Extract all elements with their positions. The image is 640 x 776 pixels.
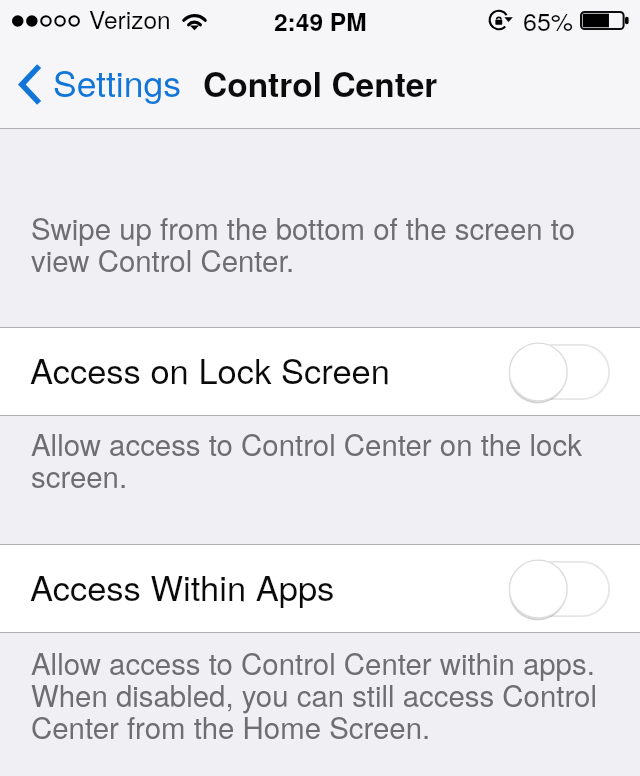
staticText: 65% (523, 2, 574, 38)
button[interactable]: Access on Lock Screen (0, 328, 640, 415)
staticText: Allow access to Control Center within ap… (31, 641, 612, 747)
button[interactable]: Settings (0, 59, 193, 110)
staticText: Allow access to Control Center on the lo… (31, 422, 600, 496)
button[interactable]: Toggle (510, 560, 610, 618)
staticText: Access on Lock Screen (30, 344, 390, 393)
staticText: Verizon (89, 1, 171, 36)
staticText: Control Center (203, 59, 438, 107)
button[interactable]: Toggle (510, 343, 610, 401)
staticText: 2:49 PM (274, 3, 367, 38)
staticText: Access Within Apps (30, 561, 335, 610)
staticText: Swipe up from the bottom of the screen t… (31, 206, 594, 280)
staticText: Settings (53, 56, 181, 107)
button[interactable]: Access Within Apps (0, 545, 640, 632)
